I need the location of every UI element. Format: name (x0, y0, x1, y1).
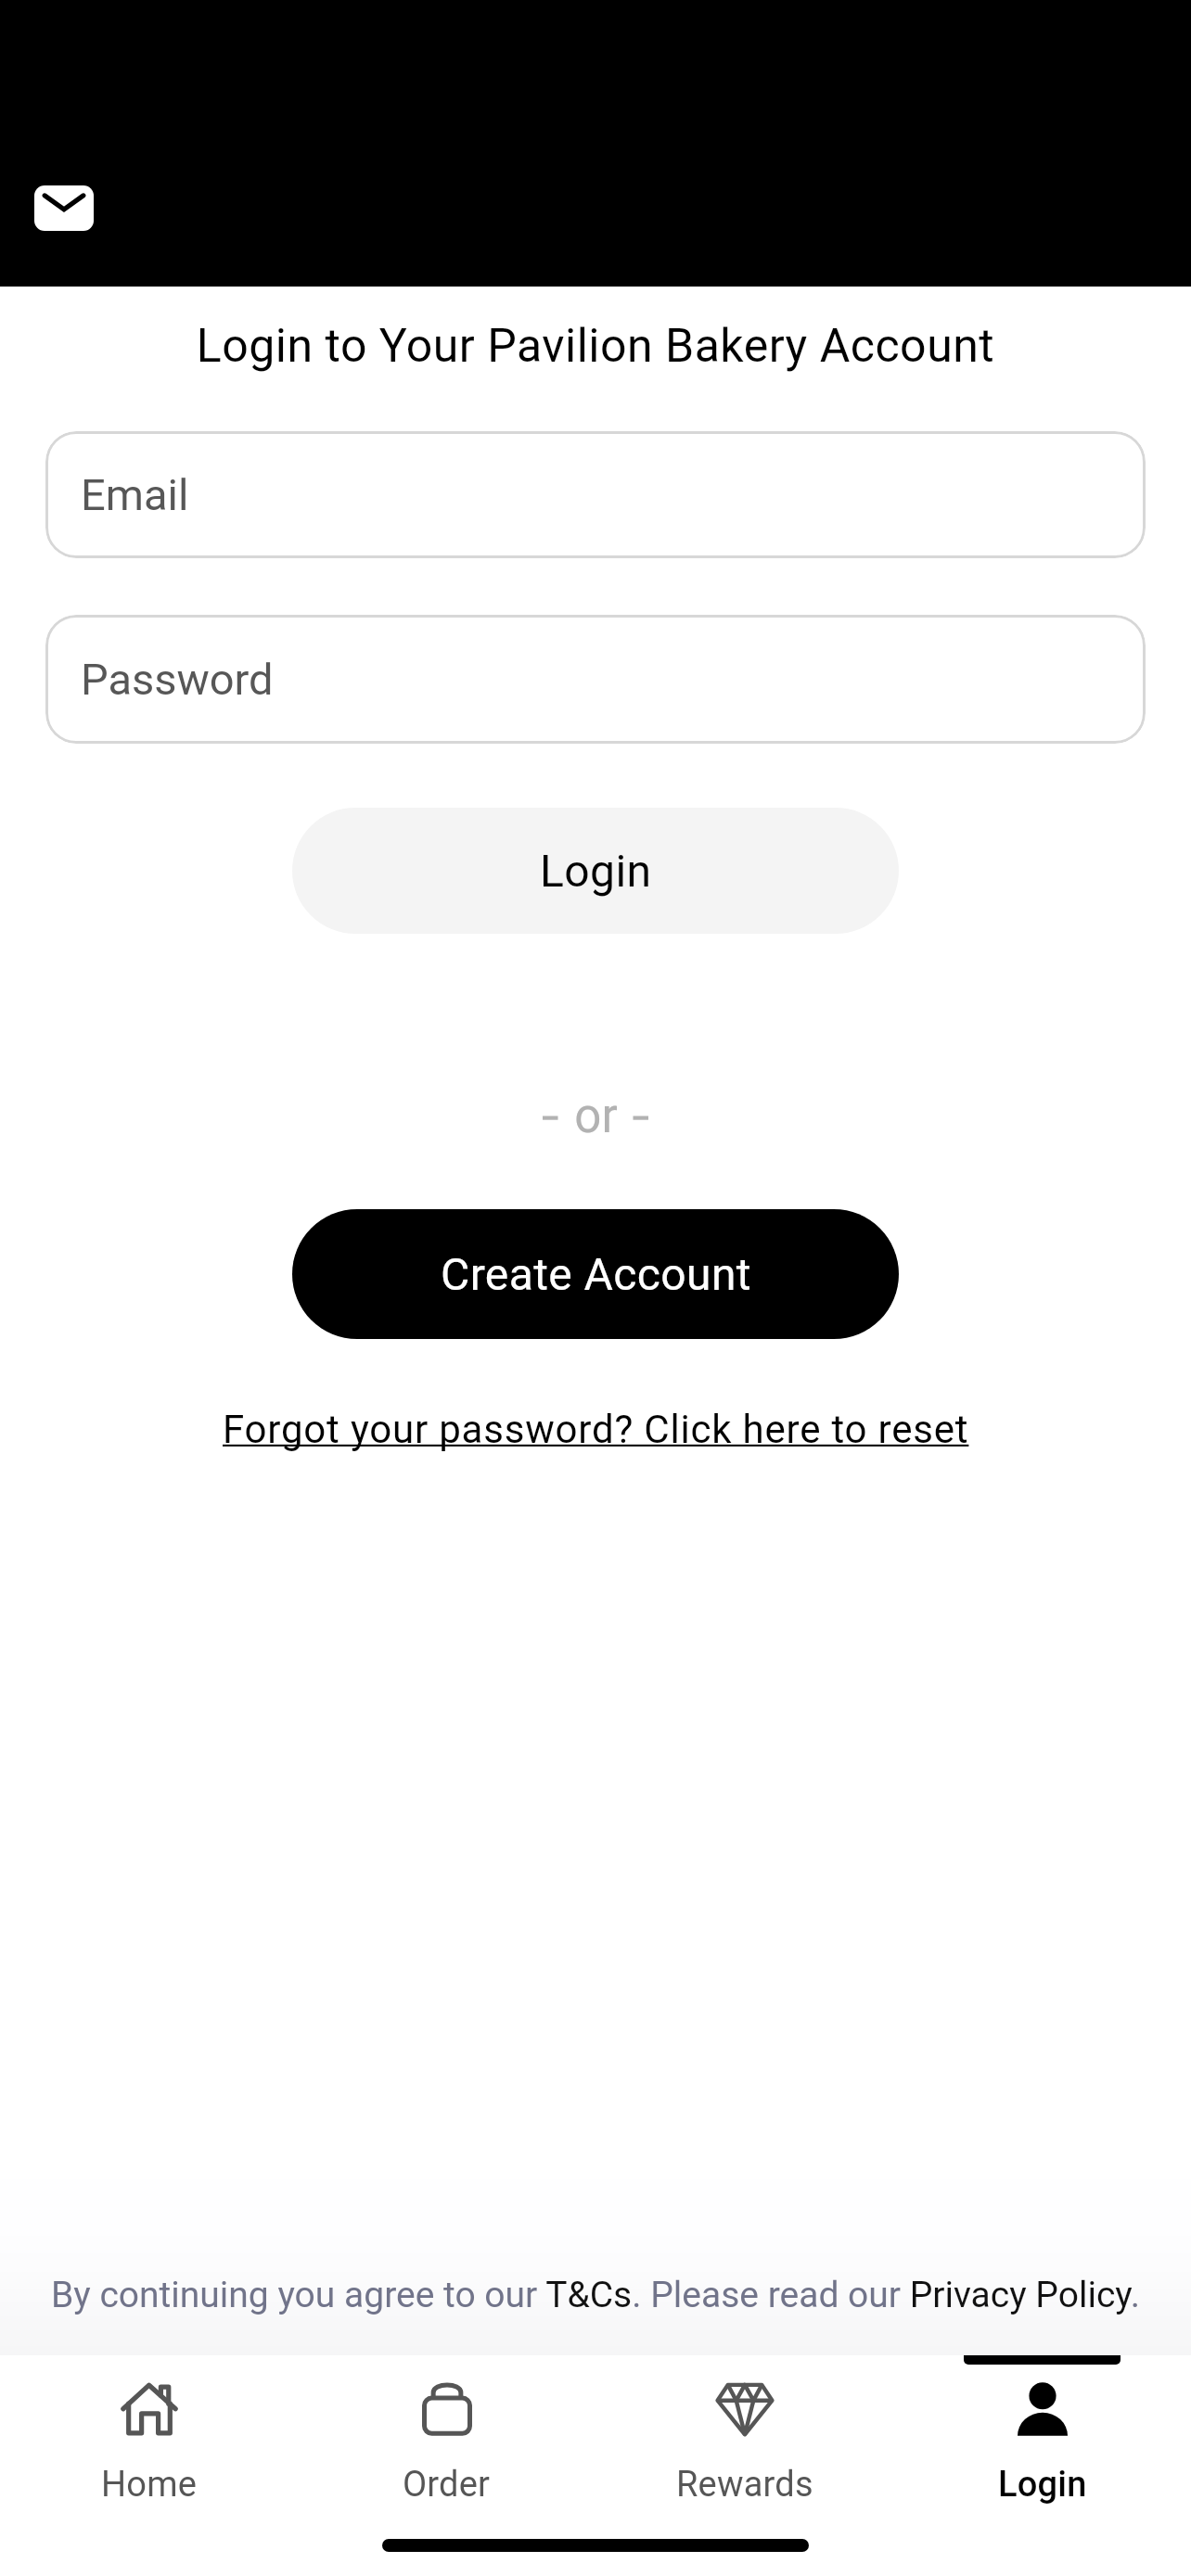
staticText: Forgot your password? Click here to rese… (223, 1407, 969, 1452)
staticText: or (574, 1089, 618, 1144)
staticText: By continuing you agree to our T&Cs. Ple… (0, 2274, 1191, 2316)
staticText: Order (403, 2464, 491, 2506)
staticText: Login (998, 2464, 1087, 2506)
button[interactable]: Create Account (292, 1209, 899, 1339)
button[interactable]: Email (45, 431, 1146, 558)
staticText: Create Account (441, 1248, 751, 1300)
button[interactable]: Forgot your password? Click here to rese… (213, 1399, 979, 1460)
button[interactable]: Home (0, 2355, 298, 2576)
button[interactable]: Messages (34, 185, 94, 231)
button[interactable]: Order (298, 2355, 595, 2576)
button[interactable]: Password (45, 615, 1146, 744)
staticText: Rewards (676, 2464, 813, 2506)
button[interactable]: Login (893, 2355, 1191, 2576)
staticText: Email (81, 469, 189, 520)
button[interactable]: Rewards (595, 2355, 893, 2576)
staticText: Password (81, 654, 274, 705)
staticText: Login (540, 845, 652, 897)
staticText: Login to Your Pavilion Bakery Account (0, 319, 1191, 374)
staticText: Home (101, 2464, 198, 2506)
button[interactable]: Login (292, 808, 899, 934)
